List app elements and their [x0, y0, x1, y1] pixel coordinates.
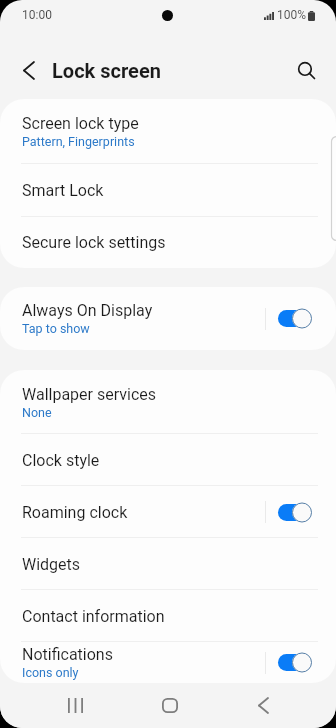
staticText: 10:00: [22, 8, 52, 22]
button[interactable]: Screen lock type: [0, 99, 336, 164]
staticText: Smart Lock: [22, 181, 104, 200]
staticText: Notifications: [22, 645, 113, 664]
staticText: Tap to show: [22, 321, 90, 336]
staticText: None: [22, 405, 52, 420]
staticText: Roaming clock: [22, 503, 128, 522]
button[interactable]: Roaming clock: [0, 486, 336, 538]
button[interactable]: Wallpaper services: [0, 370, 336, 434]
button[interactable]: Secure lock settings: [0, 217, 336, 268]
staticText: Wallpaper services: [22, 385, 157, 404]
staticText: 100%: [277, 8, 307, 22]
staticText: Lock screen: [52, 59, 161, 82]
staticText: Icons only: [22, 665, 79, 680]
staticText: Widgets: [22, 555, 81, 574]
staticText: Screen lock type: [22, 114, 139, 133]
button[interactable]: Widgets: [0, 538, 336, 590]
button[interactable]: Contact information: [0, 590, 336, 642]
button[interactable]: Search: [286, 50, 326, 90]
staticText: Clock style: [22, 451, 100, 470]
staticText: Always On Display: [22, 301, 153, 320]
staticText: Pattern, Fingerprints: [22, 134, 135, 149]
button[interactable]: Always On Display: [0, 287, 336, 350]
button[interactable]: Smart Lock: [0, 164, 336, 217]
staticText: Contact information: [22, 607, 165, 626]
button[interactable]: Back: [9, 50, 49, 90]
button[interactable]: Notifications: [0, 642, 336, 683]
button[interactable]: Back: [244, 683, 283, 728]
button[interactable]: Recent apps: [56, 683, 95, 728]
button[interactable]: Clock style: [0, 434, 336, 486]
staticText: Secure lock settings: [22, 233, 166, 252]
button[interactable]: Home: [150, 683, 189, 728]
